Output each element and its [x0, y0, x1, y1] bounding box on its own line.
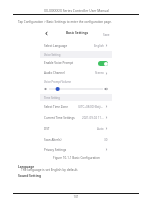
staticText: Stereo	[95, 71, 104, 75]
button[interactable]: DST	[40, 123, 112, 134]
button[interactable]: Privacy Settings	[40, 145, 112, 154]
staticText: Current Time Settings	[44, 116, 75, 120]
staticText: Select Time Zone	[44, 105, 68, 109]
staticText: Language	[18, 164, 35, 168]
staticText: 101	[73, 195, 79, 199]
button[interactable]: Save	[100, 30, 112, 39]
button[interactable]: Audio Channel	[40, 68, 112, 78]
staticText: Tap Configuration > Basic Settings to en…	[18, 20, 112, 24]
staticText: 2021-09-02 11...	[82, 116, 104, 120]
staticText: Privacy Settings	[44, 148, 67, 152]
button[interactable]: Scan Alter(s)	[40, 134, 112, 145]
staticText: Auto	[97, 127, 104, 131]
staticText: Save	[103, 33, 110, 37]
staticText: The language is set English by default.	[21, 168, 79, 172]
staticText: Enable Voice Prompt	[44, 61, 74, 65]
staticText: Basic Settings	[66, 31, 89, 35]
staticText: (UTC+08:00) Beiji...	[78, 105, 104, 109]
button[interactable]: Select Time Zone	[40, 101, 112, 112]
staticText: Scan Alter(s)	[44, 138, 62, 142]
staticText: XX-XXXXX/X Series Controller User Manual	[44, 8, 109, 12]
staticText: Time Setting	[44, 96, 60, 100]
staticText: Sound Setting	[18, 173, 41, 177]
button[interactable]: Enable Voice Prompt	[40, 58, 112, 68]
button[interactable]: Select Language	[40, 40, 112, 51]
staticText: 30	[104, 138, 108, 142]
button[interactable]: Back	[43, 27, 50, 39]
staticText: Audio Channel	[44, 71, 65, 75]
staticText: Voice Setting	[44, 53, 61, 57]
staticText: Select Language	[44, 44, 68, 48]
staticText: English	[94, 44, 104, 48]
staticText: DST	[44, 127, 50, 131]
staticText: Voice Prompt Volume	[44, 80, 72, 84]
button[interactable]: Current Time Settings	[40, 112, 112, 123]
staticText: Figure 10-1-1 Basic Configuration	[53, 156, 100, 160]
